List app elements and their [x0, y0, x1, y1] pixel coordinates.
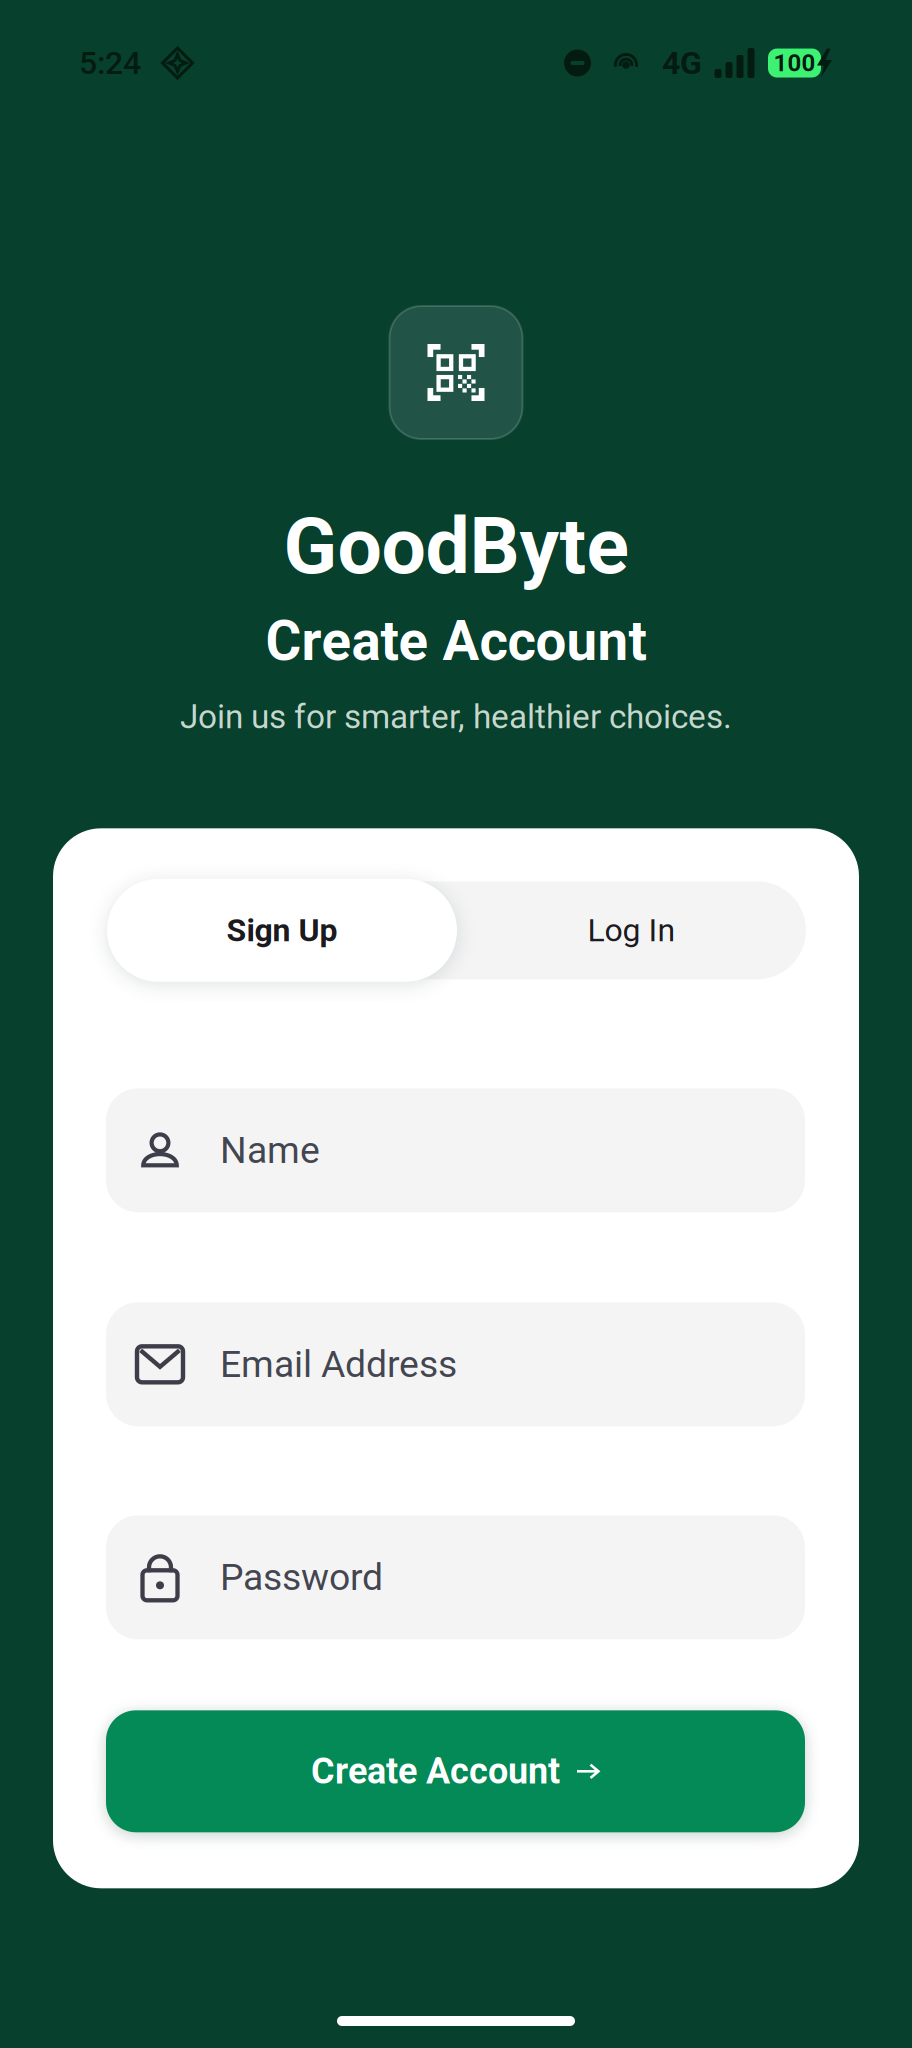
staticText: Name [220, 1128, 320, 1172]
staticText: GoodByte [283, 500, 628, 592]
staticText: Create Account [265, 609, 646, 673]
button[interactable]: Password [106, 1515, 805, 1639]
staticText: 100 [773, 49, 815, 77]
staticText: 5:24 [79, 44, 141, 82]
button[interactable]: Log In [457, 881, 806, 979]
button[interactable]: Sign Up [107, 879, 457, 982]
staticText: Email Address [220, 1342, 457, 1386]
staticText: Join us for smarter, healthier choices. [180, 697, 732, 736]
staticText: Password [220, 1555, 383, 1599]
staticText: 4G [662, 44, 702, 82]
button[interactable]: Name [106, 1088, 805, 1212]
button[interactable]: Create Account [106, 1710, 805, 1832]
staticText: Log In [587, 912, 675, 949]
button[interactable]: Email Address [106, 1302, 805, 1426]
staticText: Sign Up [226, 912, 337, 949]
staticText: Create Account [311, 1750, 560, 1792]
